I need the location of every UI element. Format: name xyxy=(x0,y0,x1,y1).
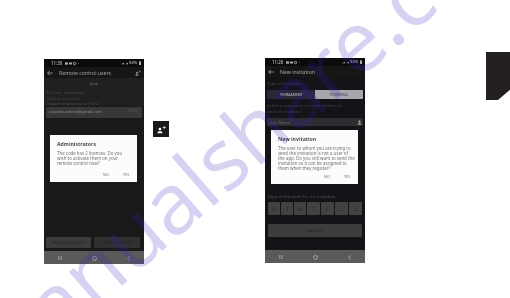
staticText: usuario.admin@gmail.com xyxy=(49,109,102,115)
staticText: 11:26 xyxy=(272,59,284,65)
staticText: YES xyxy=(123,172,130,177)
button[interactable]: PERMANENT xyxy=(267,90,315,99)
button[interactable]: Back xyxy=(344,252,354,262)
button[interactable]: TEMPORAL xyxy=(315,90,363,99)
staticText: M xyxy=(272,206,277,212)
staticText: INCREASE LICENCES xyxy=(52,240,86,245)
button[interactable]: usuario.admin@gmail.com xyxy=(49,109,139,118)
staticText: Select a username or email address to se… xyxy=(267,103,343,114)
staticText: T xyxy=(312,206,315,212)
button[interactable]: Add user xyxy=(153,121,169,137)
staticText: NO xyxy=(324,174,330,179)
button[interactable]: Home xyxy=(310,252,320,262)
staticText: Administrators xyxy=(57,140,96,147)
staticText: NO xyxy=(103,172,109,177)
staticText: S xyxy=(340,206,343,212)
button[interactable]: Choose contact xyxy=(356,119,362,125)
button[interactable]: YES xyxy=(122,171,131,178)
staticText: F xyxy=(326,206,329,212)
button[interactable]: Home xyxy=(89,253,99,263)
button[interactable]: NO xyxy=(102,171,110,178)
button[interactable]: Back xyxy=(265,66,276,77)
staticText: The user to whom you are trying to send … xyxy=(278,145,355,171)
staticText: DELETE LICENCES xyxy=(102,240,132,245)
staticText: New invitation xyxy=(278,135,317,142)
button[interactable]: YES xyxy=(343,173,352,180)
staticText: Type of invitation xyxy=(267,81,301,87)
button[interactable]: Add user xyxy=(132,67,143,78)
button[interactable]: T xyxy=(281,202,293,215)
button[interactable]: NO xyxy=(323,173,331,180)
staticText: Jose xyxy=(47,81,141,87)
staticText: 92% xyxy=(350,59,359,65)
staticText: New invitation xyxy=(280,68,316,75)
button[interactable]: Back xyxy=(44,67,55,78)
button[interactable]: Recents xyxy=(55,253,65,263)
button[interactable]: INCREASE LICENCES xyxy=(46,237,91,248)
button[interactable]: M xyxy=(268,202,280,215)
staticText: TEMPORAL xyxy=(329,92,349,97)
staticText: User Name xyxy=(269,120,291,125)
button[interactable]: Back xyxy=(123,253,133,263)
button[interactable]: W xyxy=(294,202,306,215)
staticText: YES xyxy=(344,174,351,179)
staticText: ID Lock: necessary Closed: incorrect Sup… xyxy=(47,90,99,106)
staticText: ADMIN xyxy=(128,109,139,113)
button[interactable]: User Name xyxy=(269,118,362,126)
button[interactable]: Recents xyxy=(276,252,286,262)
staticText: T xyxy=(286,206,289,212)
button[interactable]: DELETE LICENCES xyxy=(94,237,140,248)
staticText: 92% xyxy=(129,60,138,66)
staticText: 11:30 xyxy=(51,60,63,66)
staticText: S xyxy=(354,206,357,212)
staticText: Days of the week for the invitation xyxy=(268,194,336,200)
staticText: ACCEPT xyxy=(308,228,323,234)
staticText: The code has 2 licences. Do you wish to … xyxy=(57,150,123,166)
staticText: Remote control users xyxy=(59,69,112,76)
staticText: W xyxy=(298,206,303,212)
staticText: PERMANENT xyxy=(280,92,303,97)
